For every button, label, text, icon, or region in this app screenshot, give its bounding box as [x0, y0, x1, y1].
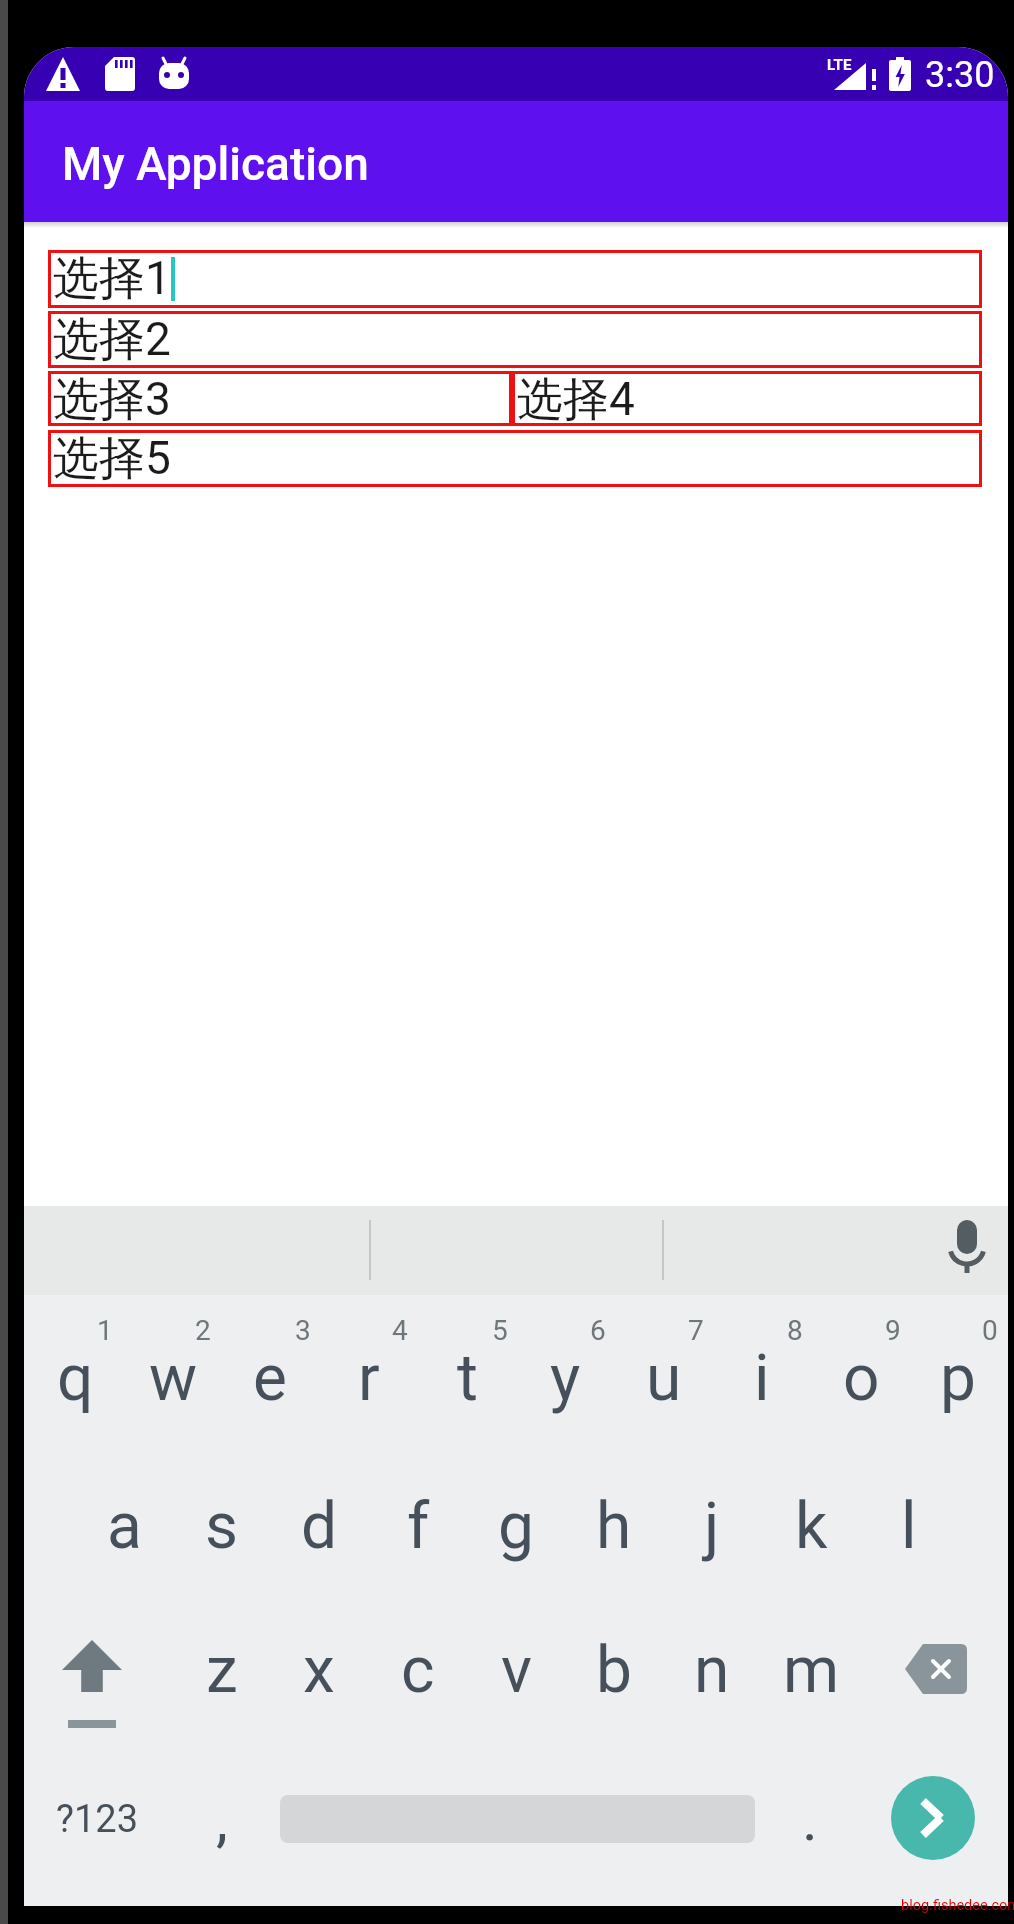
staticText: 选择2	[53, 311, 171, 368]
staticText: 选择1	[53, 250, 171, 308]
button[interactable]: 选择4	[512, 371, 982, 426]
staticText: 选择3	[53, 371, 171, 426]
button[interactable]	[905, 1644, 967, 1694]
staticText: z	[206, 1633, 238, 1708]
staticText: 7	[688, 1314, 704, 1347]
button[interactable]: 选择1	[48, 250, 982, 308]
staticText: i	[754, 1341, 770, 1416]
staticText: ?123	[56, 1797, 139, 1842]
staticText: blog.fishedee.com	[901, 1897, 1014, 1914]
button[interactable]: 选择2	[48, 311, 982, 368]
staticText: 0	[982, 1314, 998, 1347]
button[interactable]: 选择3	[48, 371, 512, 426]
staticText: 3:30	[925, 54, 995, 96]
staticText: 3	[295, 1314, 311, 1347]
staticText: l	[901, 1489, 917, 1564]
staticText: f	[407, 1489, 430, 1564]
staticText: .	[802, 1784, 818, 1854]
staticText: ,	[216, 1784, 228, 1854]
staticText: b	[596, 1633, 632, 1708]
staticText: x	[303, 1633, 335, 1708]
staticText: d	[301, 1489, 338, 1564]
staticText: 4	[392, 1314, 408, 1347]
staticText: 6	[590, 1314, 606, 1347]
staticText: c	[401, 1633, 435, 1708]
staticText: 2	[195, 1314, 211, 1347]
staticText: t	[457, 1341, 478, 1416]
staticText: q	[57, 1341, 94, 1416]
staticText: p	[940, 1341, 976, 1416]
staticText: LTE	[827, 56, 852, 74]
staticText: v	[501, 1633, 532, 1708]
staticText: a	[107, 1489, 142, 1564]
button[interactable]	[891, 1776, 975, 1860]
staticText: j	[704, 1489, 720, 1564]
staticText: h	[596, 1489, 632, 1564]
staticText: u	[646, 1341, 682, 1416]
staticText: e	[253, 1341, 287, 1416]
staticText: y	[550, 1341, 581, 1416]
button[interactable]	[949, 1220, 985, 1280]
staticText: k	[795, 1489, 828, 1564]
staticText: My Application	[62, 137, 369, 191]
staticText: 5	[492, 1314, 508, 1347]
staticText: o	[843, 1341, 880, 1416]
staticText: s	[205, 1489, 239, 1564]
button[interactable]	[62, 1640, 122, 1730]
staticText: w	[149, 1341, 198, 1416]
staticText: r	[358, 1341, 380, 1416]
button[interactable]: 选择5	[48, 430, 982, 487]
staticText: m	[783, 1633, 840, 1708]
staticText: 选择4	[517, 371, 635, 426]
staticText: n	[694, 1633, 730, 1708]
staticText: 8	[787, 1314, 803, 1347]
staticText: 1	[97, 1314, 113, 1347]
staticText: 选择5	[53, 430, 171, 487]
staticText: g	[498, 1489, 534, 1564]
staticText: 9	[885, 1314, 901, 1347]
